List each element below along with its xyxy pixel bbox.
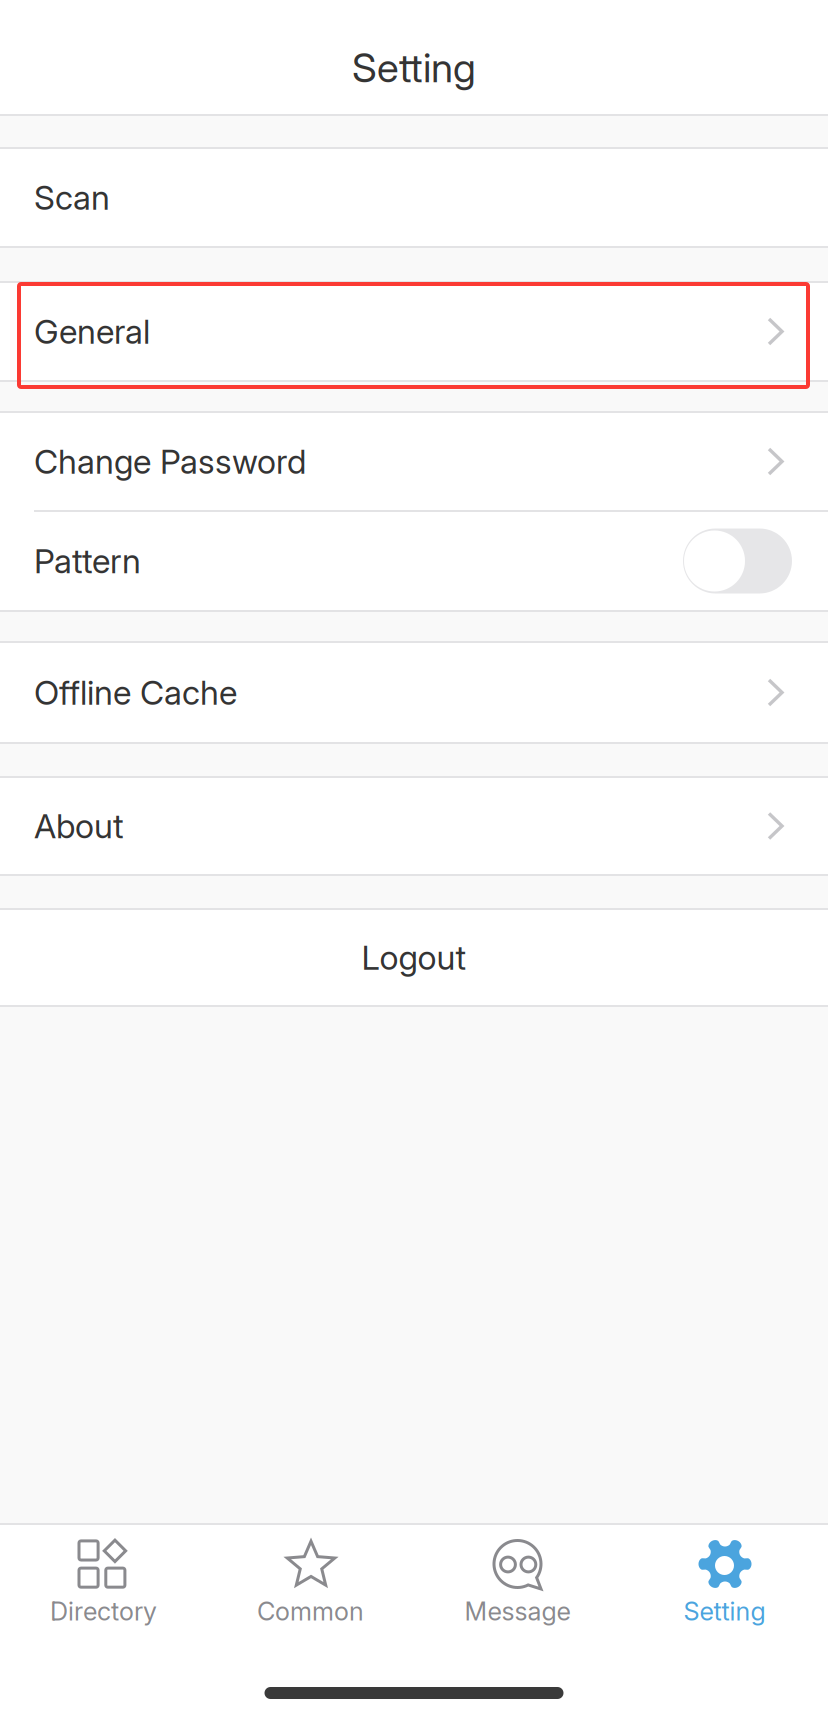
button[interactable]: Common (207, 1525, 414, 1657)
button[interactable]: Pattern (0, 512, 828, 610)
staticText: General (34, 311, 150, 352)
button[interactable]: Setting (621, 1525, 828, 1657)
staticText: Setting (683, 1596, 765, 1627)
staticText: About (34, 806, 124, 846)
staticText: Change Password (34, 441, 306, 482)
button[interactable]: Offline Cache (0, 643, 828, 742)
staticText: Message (464, 1596, 570, 1627)
staticText: Pattern (34, 541, 141, 581)
button[interactable]: Change Password (0, 413, 828, 510)
staticText: Logout (361, 937, 466, 978)
staticText: Offline Cache (34, 672, 237, 713)
button[interactable]: About (0, 778, 828, 874)
staticText: Scan (34, 177, 110, 218)
button[interactable]: Directory (0, 1525, 207, 1657)
staticText: Directory (50, 1596, 157, 1627)
button[interactable]: General (0, 283, 828, 380)
staticText: Common (257, 1596, 364, 1627)
button[interactable]: Logout (0, 910, 828, 1005)
button[interactable]: Scan (0, 149, 828, 246)
button[interactable]: Message (414, 1525, 621, 1657)
staticText: Setting (352, 44, 476, 92)
